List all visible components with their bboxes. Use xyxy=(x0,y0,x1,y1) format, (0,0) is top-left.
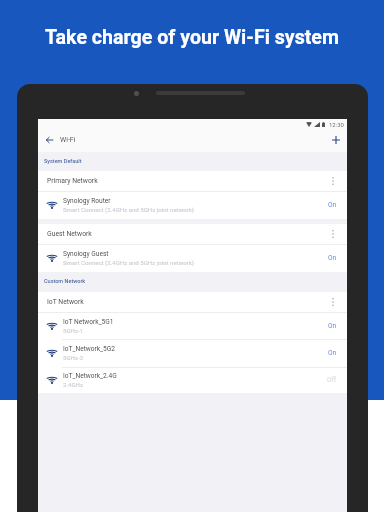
button[interactable]: Synology Router xyxy=(38,191,347,219)
staticText: 2.4GHz xyxy=(63,381,83,388)
button[interactable]: More options xyxy=(318,171,347,191)
staticText: Take charge of your Wi-Fi system xyxy=(0,26,384,49)
staticText: IoT_Network_2.4G xyxy=(63,372,117,380)
button[interactable]: Add network xyxy=(325,129,347,151)
button[interactable]: IoT_Network_2.4G xyxy=(38,367,347,393)
staticText: Off xyxy=(327,376,337,384)
staticText: Wi-Fi xyxy=(60,136,325,144)
staticText: IoT Network xyxy=(47,298,318,306)
staticText: Primary Network xyxy=(47,177,318,185)
button[interactable]: Back xyxy=(38,129,60,151)
staticText: Synology Guest xyxy=(63,250,109,258)
staticText: 5GHz-2 xyxy=(63,354,84,361)
button[interactable]: Synology Guest xyxy=(38,244,347,272)
button[interactable]: IoT Network xyxy=(38,292,347,312)
staticText: Synology Router xyxy=(63,197,111,205)
button[interactable]: IoT_Network_5G2 xyxy=(38,339,347,367)
staticText: IoT Network_5G1 xyxy=(63,318,114,326)
staticText: 12:30 xyxy=(329,121,344,128)
staticText: System Default xyxy=(44,158,82,164)
staticText: On xyxy=(328,201,337,209)
staticText: On xyxy=(328,349,337,357)
staticText: Custom Network xyxy=(44,278,86,284)
staticText: 5GHz-1 xyxy=(63,327,84,334)
staticText: On xyxy=(328,322,337,330)
staticText: Guest Network xyxy=(47,230,318,238)
button[interactable]: More options xyxy=(318,292,347,312)
staticText: On xyxy=(328,254,337,262)
button[interactable]: Guest Network xyxy=(38,224,347,244)
button[interactable]: Primary Network xyxy=(38,171,347,191)
button[interactable]: IoT Network_5G1 xyxy=(38,312,347,339)
button[interactable]: More options xyxy=(318,224,347,244)
staticText: IoT_Network_5G2 xyxy=(63,345,115,353)
staticText: Smart Connect (2.4GHz and 5GHz joint net… xyxy=(63,206,194,213)
staticText: Smart Connect (2.4GHz and 5GHz joint net… xyxy=(63,259,194,266)
